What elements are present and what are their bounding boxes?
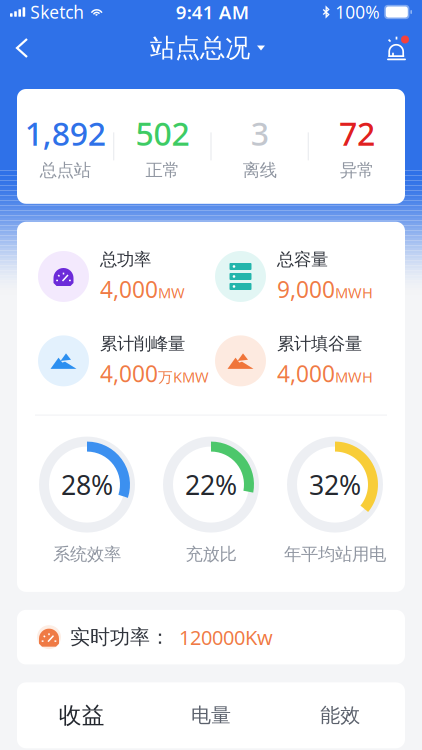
button[interactable]: 电量 <box>146 684 276 747</box>
staticText: 3 <box>251 112 269 154</box>
staticText: MWH <box>335 367 373 387</box>
staticText: MW <box>158 283 185 302</box>
staticText: 4,000 <box>100 274 158 304</box>
staticText: 100% <box>335 0 379 23</box>
staticText: 累计削峰量 <box>100 333 185 354</box>
staticText: 异常 <box>340 159 374 181</box>
staticText: 累计填谷量 <box>277 333 362 354</box>
staticText: Sketch <box>30 0 84 23</box>
button[interactable]: Notifications <box>371 25 422 71</box>
staticText: 收益 <box>59 701 105 729</box>
staticText: 正常 <box>145 159 179 181</box>
staticText: 电量 <box>191 703 231 728</box>
button[interactable]: 站点总况 <box>150 25 265 71</box>
staticText: 1,892 <box>25 112 106 154</box>
button[interactable]: 能效 <box>276 684 405 747</box>
staticText: 站点总况 <box>150 32 250 63</box>
staticText: 22% <box>185 467 237 502</box>
staticText: 年平均站用电 <box>284 544 386 565</box>
staticText: 502 <box>135 112 189 154</box>
staticText: 总容量 <box>277 249 328 270</box>
staticText: 系统效率 <box>53 544 121 565</box>
staticText: 32% <box>309 467 361 502</box>
staticText: 充放比 <box>185 544 236 565</box>
staticText: 9:41 AM <box>176 0 249 24</box>
staticText: 4,000 <box>100 358 158 389</box>
staticText: 120000Kw <box>179 624 273 650</box>
staticText: 9,000 <box>277 274 335 304</box>
staticText: 实时功率： <box>70 625 170 649</box>
staticText: MWH <box>335 283 373 302</box>
button[interactable]: Back <box>0 25 44 71</box>
staticText: 万KMW <box>158 367 209 387</box>
staticText: 总功率 <box>100 249 151 270</box>
staticText: 总点站 <box>40 159 91 181</box>
button[interactable]: 收益 <box>17 682 146 748</box>
staticText: 能效 <box>320 703 360 728</box>
staticText: 离线 <box>243 159 277 181</box>
staticText: 28% <box>61 467 113 502</box>
staticText: 4,000 <box>277 358 335 389</box>
staticText: 72 <box>339 112 375 154</box>
